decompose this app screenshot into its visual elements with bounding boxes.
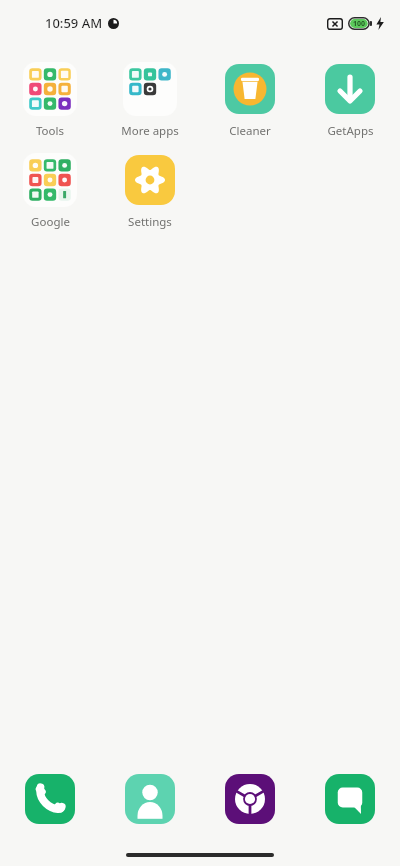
button[interactable]: Contacts xyxy=(100,774,200,824)
staticText: 100 xyxy=(353,19,366,29)
staticText: GetApps xyxy=(327,123,374,139)
button[interactable]: Chrome xyxy=(200,774,300,824)
button[interactable]: Phone xyxy=(0,774,100,824)
button[interactable]: Google xyxy=(0,153,100,230)
staticText: Settings xyxy=(128,214,172,230)
staticText: 10:59 AM xyxy=(45,14,103,32)
button[interactable]: Settings xyxy=(100,153,200,230)
staticText: Tools xyxy=(36,123,64,139)
button[interactable]: Cleaner xyxy=(200,62,300,139)
button[interactable]: More apps xyxy=(100,62,200,139)
staticText: More apps xyxy=(121,123,179,139)
button[interactable]: GetApps xyxy=(300,62,400,139)
button[interactable]: Messages xyxy=(300,774,400,824)
button[interactable]: Tools xyxy=(0,62,100,139)
staticText: Cleaner xyxy=(229,123,271,139)
staticText: Google xyxy=(31,214,70,230)
